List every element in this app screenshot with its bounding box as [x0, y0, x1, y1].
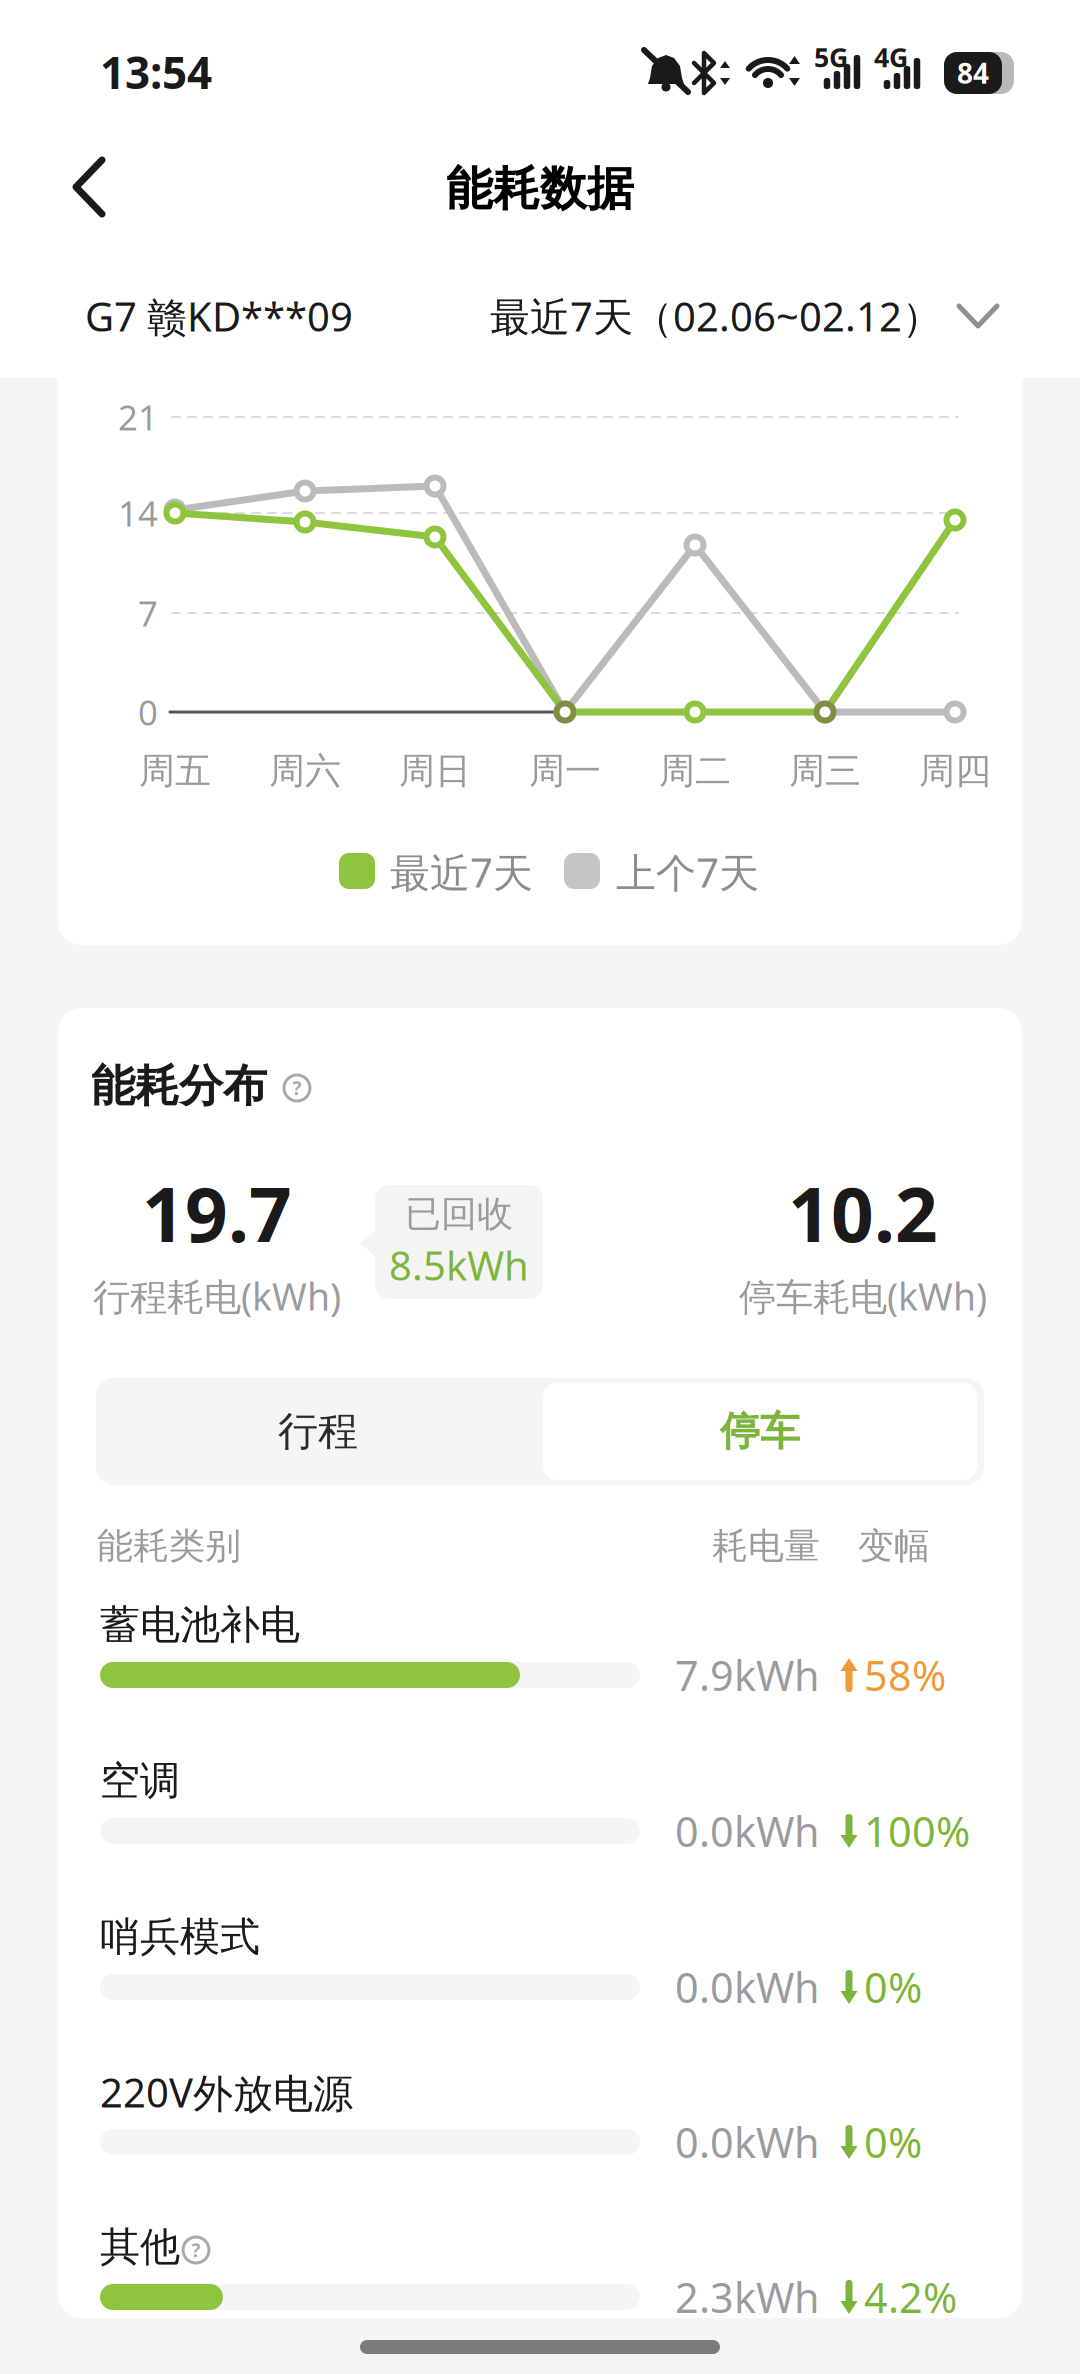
button[interactable]: 返回: [48, 136, 136, 238]
staticText: G7 赣KD***09: [85, 289, 353, 343]
staticText: 100%: [864, 1804, 970, 1858]
staticText: 4G: [874, 39, 908, 75]
staticText: 0.0kWh: [675, 2115, 820, 2169]
staticText: 0%: [864, 2115, 922, 2169]
staticText: 10.2: [788, 1163, 938, 1263]
staticText: 84: [957, 54, 989, 92]
staticText: 最近7天: [390, 845, 533, 898]
staticText: 蓄电池补电: [100, 1600, 300, 1649]
staticText: 周一: [529, 749, 601, 793]
staticText: 停车耗电(kWh): [739, 1271, 987, 1321]
staticText: 能耗分布: [91, 1059, 267, 1113]
staticText: 19.7: [142, 1163, 292, 1263]
staticText: 行程耗电(kWh): [93, 1271, 341, 1321]
staticText: 7: [138, 590, 158, 636]
staticText: 14: [118, 490, 158, 536]
staticText: ?: [191, 2238, 200, 2262]
button[interactable]: 其他说明: [181, 2235, 211, 2265]
button[interactable]: 行程: [98, 1378, 538, 1485]
staticText: 上个7天: [616, 845, 759, 898]
staticText: 2.3kWh: [675, 2270, 820, 2324]
staticText: 行程: [278, 1407, 358, 1456]
button[interactable]: 能耗分布说明: [282, 1073, 312, 1103]
staticText: 周四: [919, 749, 991, 793]
staticText: 周二: [659, 749, 731, 793]
staticText: 21: [118, 394, 158, 440]
staticText: 周五: [139, 749, 211, 793]
staticText: 周日: [399, 749, 471, 793]
staticText: 变幅: [858, 1524, 930, 1568]
staticText: 0.0kWh: [675, 1804, 820, 1858]
staticText: 能耗类别: [97, 1524, 241, 1568]
staticText: 周三: [789, 749, 861, 793]
button[interactable]: 停车: [543, 1383, 977, 1480]
staticText: 0: [138, 689, 158, 735]
staticText: 4.2%: [864, 2270, 957, 2324]
staticText: 7.9kWh: [675, 1648, 820, 1702]
staticText: 13:54: [100, 43, 212, 101]
staticText: 8.5kWh: [389, 1238, 529, 1291]
staticText: 停车: [720, 1407, 800, 1456]
staticText: 最近7天（02.06~02.12）: [490, 289, 942, 342]
button[interactable]: 选择日期范围: [422, 286, 1012, 348]
staticText: 耗电量: [712, 1524, 820, 1568]
staticText: 5G: [814, 39, 848, 75]
staticText: 周六: [269, 749, 341, 793]
staticText: 0%: [864, 1960, 922, 2014]
staticText: 空调: [100, 1756, 180, 1805]
staticText: ?: [292, 1076, 301, 1100]
staticText: 哨兵模式: [100, 1912, 260, 1961]
staticText: 已回收: [405, 1192, 513, 1236]
staticText: 能耗数据: [446, 160, 634, 218]
staticText: 220V外放电源: [100, 2065, 353, 2119]
staticText: 58%: [864, 1648, 946, 1702]
staticText: 其他: [100, 2222, 180, 2271]
staticText: 0.0kWh: [675, 1960, 820, 2014]
